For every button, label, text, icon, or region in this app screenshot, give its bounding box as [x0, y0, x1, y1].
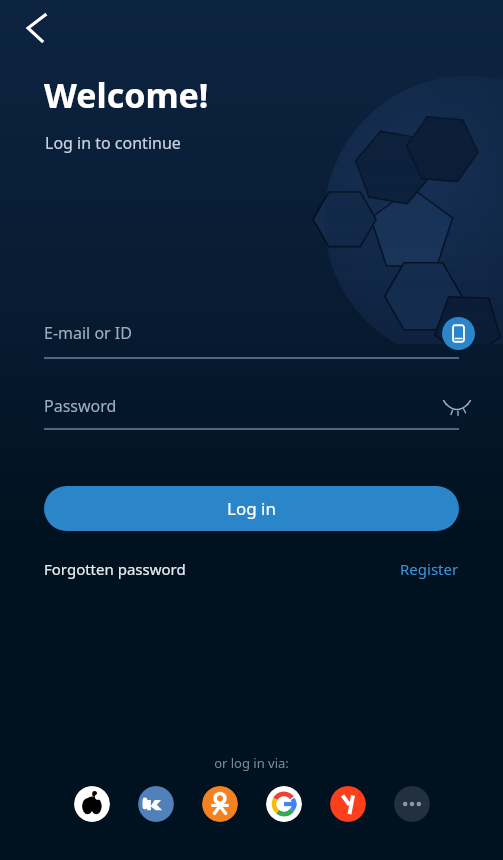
staticText: Password — [44, 395, 117, 417]
button[interactable]: More login options — [394, 786, 430, 822]
button[interactable]: Back — [14, 6, 62, 54]
button[interactable]: Forgotten password — [44, 553, 186, 585]
staticText: Register — [400, 559, 459, 579]
staticText: Log in — [227, 497, 276, 520]
staticText: Welcome! — [44, 72, 209, 118]
staticText: or log in via: — [0, 754, 503, 772]
button[interactable]: Show password — [439, 388, 475, 424]
button[interactable]: Log in with Odnoklassniki — [202, 786, 238, 822]
button[interactable]: Register — [400, 553, 459, 585]
button[interactable]: Log in with VK — [138, 786, 174, 822]
staticText: Log in to continue — [45, 132, 181, 154]
button[interactable]: Log in with Apple — [74, 786, 110, 822]
button[interactable]: Log in with Yandex — [330, 786, 366, 822]
button[interactable]: E-mail or ID — [44, 309, 428, 357]
staticText: Forgotten password — [44, 559, 186, 579]
staticText: E-mail or ID — [44, 322, 132, 344]
button[interactable]: Log in — [44, 486, 459, 531]
button[interactable]: Log in with Google — [266, 786, 302, 822]
button[interactable]: Log in with phone number — [442, 317, 475, 350]
button[interactable]: Password — [44, 384, 428, 428]
